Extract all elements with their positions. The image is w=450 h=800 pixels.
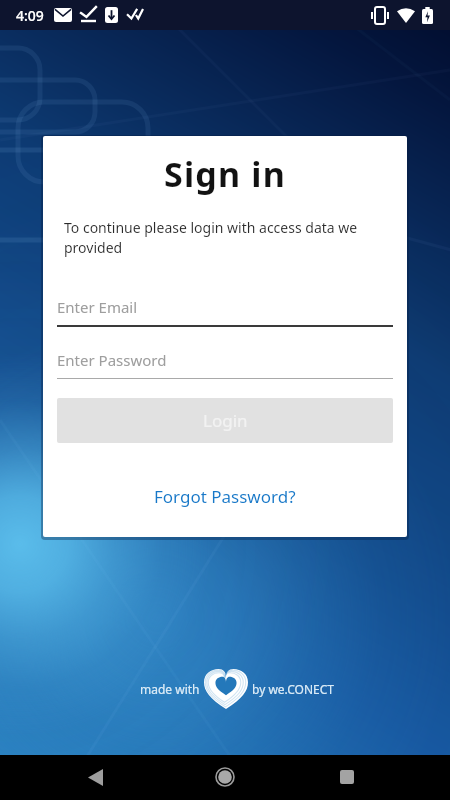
button[interactable]: [332, 762, 362, 792]
staticText: Enter Password: [57, 350, 167, 370]
staticText: made with: [140, 681, 200, 697]
button[interactable]: [210, 762, 240, 792]
button[interactable]: [80, 762, 110, 792]
staticText: by we.CONECT: [252, 681, 334, 697]
button[interactable]: Enter Password: [57, 350, 393, 379]
staticText: Forgot Password?: [154, 485, 296, 508]
staticText: Enter Email: [57, 297, 138, 317]
staticText: Sign in: [43, 151, 407, 197]
staticText: To continue please login with access dat…: [64, 218, 358, 257]
staticText: Login: [203, 409, 248, 432]
staticText: 4:09: [16, 6, 44, 25]
button[interactable]: Forgot Password?: [154, 485, 296, 508]
button[interactable]: Enter Email: [57, 297, 393, 327]
